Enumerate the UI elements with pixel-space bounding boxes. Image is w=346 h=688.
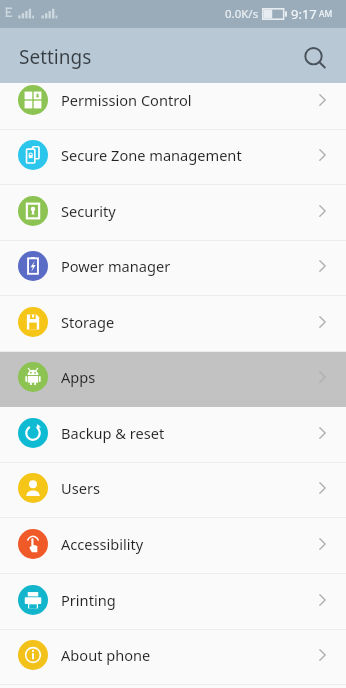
staticText: Power manager	[61, 256, 171, 276]
button[interactable]: Backup & reset	[0, 407, 346, 463]
staticText: AM	[319, 8, 333, 20]
staticText: Security	[61, 201, 116, 221]
staticText: Permission Control	[61, 90, 192, 110]
button[interactable]: About phone	[0, 630, 346, 685]
button[interactable]: Power manager	[0, 241, 346, 296]
staticText: About phone	[61, 645, 151, 665]
staticText: 9:17	[291, 5, 317, 23]
button[interactable]: Search	[300, 43, 330, 73]
staticText: 0.0K/s	[225, 6, 259, 22]
button[interactable]: Apps	[0, 352, 346, 407]
staticText: Settings	[19, 44, 92, 70]
button[interactable]: Accessibility	[0, 518, 346, 574]
button[interactable]: Users	[0, 463, 346, 518]
staticText: Secure Zone management	[61, 145, 242, 165]
staticText: Apps	[61, 367, 96, 387]
staticText: Users	[61, 478, 100, 498]
button[interactable]: Permission Control	[0, 83, 346, 130]
staticText: Printing	[61, 590, 116, 610]
button[interactable]: Printing	[0, 574, 346, 630]
staticText: Accessibility	[61, 534, 144, 554]
button[interactable]: Storage	[0, 296, 346, 352]
staticText: Backup & reset	[61, 423, 165, 443]
button[interactable]: Security	[0, 185, 346, 241]
staticText: Storage	[61, 312, 115, 332]
button[interactable]: Secure Zone management	[0, 130, 346, 185]
